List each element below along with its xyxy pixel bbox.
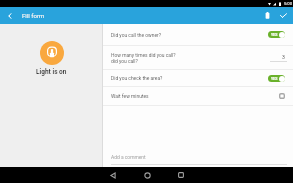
button[interactable]: Save xyxy=(275,7,291,24)
staticText: Did you check the area? xyxy=(111,75,163,81)
button[interactable]: How many times did you call? xyxy=(103,46,293,69)
staticText: Add a comment xyxy=(111,154,146,160)
staticText: Light is on xyxy=(36,68,67,76)
staticText: YES xyxy=(271,77,278,81)
button[interactable]: Navigate up xyxy=(0,7,20,24)
staticText: 5:00 xyxy=(284,1,293,6)
staticText: did you call? xyxy=(111,58,138,64)
button[interactable]: Recent apps xyxy=(169,167,193,183)
button[interactable]: Back xyxy=(101,167,125,183)
button[interactable]: Light is on xyxy=(40,41,64,65)
staticText: Did you call the owner? xyxy=(111,32,161,38)
staticText: 3 xyxy=(282,54,285,60)
button[interactable]: YES xyxy=(268,31,285,38)
button[interactable]: YES xyxy=(268,75,285,82)
button[interactable]: Wait few minutes xyxy=(103,87,293,105)
button[interactable]: Did you check the area? xyxy=(103,70,293,86)
staticText: Wait few minutes xyxy=(111,93,149,99)
button[interactable]: Add a comment xyxy=(103,151,293,167)
button[interactable]: Did you call the owner? xyxy=(103,24,293,45)
staticText: How many times did you call? xyxy=(111,52,176,58)
button[interactable]: Wait few minutes checkbox xyxy=(279,93,285,99)
staticText: YES xyxy=(271,33,278,37)
staticText: Fill form xyxy=(22,12,45,19)
button[interactable]: Clipboard xyxy=(259,7,275,24)
button[interactable]: Home xyxy=(135,167,159,183)
